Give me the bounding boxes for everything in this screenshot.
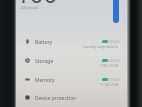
- staticText: Device protection: [35, 95, 77, 102]
- button[interactable]: Battery: [16, 34, 128, 53]
- staticText: Memory: [35, 77, 55, 84]
- staticText: Learning usage patterns: [60, 45, 118, 49]
- staticText: All good!: [21, 5, 39, 11]
- button[interactable]: Device protection: [16, 90, 128, 107]
- button[interactable]: Memory: [16, 72, 128, 91]
- staticText: Storage: [35, 58, 54, 65]
- staticText: 100: [16, 0, 58, 10]
- staticText: 9 GB / 32 GB: [60, 64, 118, 68]
- staticText: Battery: [35, 39, 53, 46]
- staticText: 1.1 GB / 4 GB: [60, 83, 118, 87]
- button[interactable]: Storage: [16, 53, 128, 72]
